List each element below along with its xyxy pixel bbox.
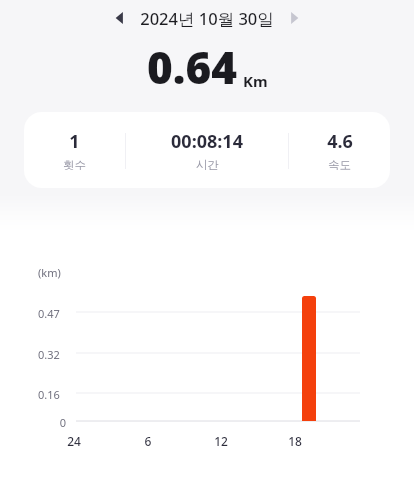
staticText: 24: [60, 433, 88, 449]
button[interactable]: 2024년 10월 30일: [135, 7, 279, 30]
staticText: 횟수: [63, 158, 86, 172]
staticText: 2024년 10월 30일: [140, 7, 274, 30]
staticText: 4.6: [327, 129, 353, 154]
staticText: 18: [281, 433, 309, 449]
staticText: Km: [243, 71, 268, 91]
staticText: (km): [38, 265, 82, 280]
staticText: 0.32: [38, 347, 82, 362]
button[interactable]: Previous day: [105, 3, 135, 33]
button[interactable]: Next day: [279, 3, 309, 33]
staticText: 0.47: [38, 306, 82, 321]
staticText: 0.64: [147, 37, 238, 97]
staticText: 1: [69, 129, 80, 154]
staticText: 6: [134, 433, 162, 449]
staticText: 00:08:14: [171, 129, 243, 154]
staticText: 0.16: [38, 387, 82, 402]
button[interactable]: 1: [24, 112, 390, 188]
staticText: 속도: [328, 158, 351, 172]
staticText: 시간: [196, 158, 219, 172]
staticText: 12: [207, 433, 235, 449]
staticText: 0: [38, 415, 66, 430]
